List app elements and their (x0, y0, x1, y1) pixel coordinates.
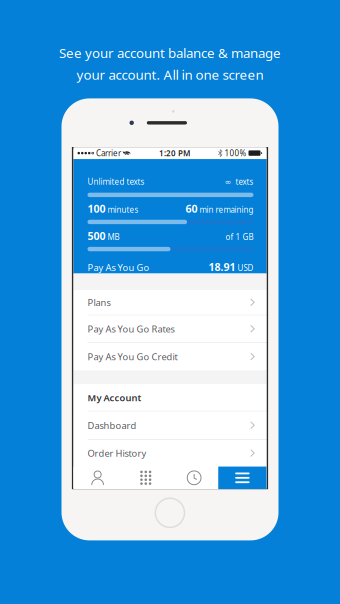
staticText: 100% (222, 148, 246, 158)
button[interactable]: Pay As You Go Rates (73, 315, 266, 342)
staticText: of 1 GB (225, 231, 253, 242)
staticText: Order History (87, 447, 146, 459)
button[interactable]: Plans (73, 290, 266, 315)
staticText: My Account (87, 391, 141, 404)
staticText: 60 (185, 202, 197, 216)
button[interactable]: Account (73, 467, 122, 489)
button[interactable]: Dashboard (73, 412, 266, 439)
staticText: See your account balance & manage (59, 44, 281, 62)
button[interactable]: Keypad (122, 467, 170, 489)
staticText: Dashboard (87, 419, 136, 432)
staticText: Pay As You Go Rates (87, 323, 174, 335)
staticText: Unlimited texts (87, 176, 144, 187)
staticText: 18.91 (208, 260, 235, 274)
staticText: MB (107, 231, 119, 242)
staticText (246, 149, 248, 158)
staticText: 500 (87, 229, 105, 243)
button[interactable]: Menu (218, 467, 266, 489)
staticText: ∞ texts (224, 176, 253, 187)
staticText: Carrier (94, 148, 123, 158)
staticText: Pay As You Go (87, 261, 149, 274)
staticText: 100 (87, 202, 105, 216)
button[interactable]: Recents (170, 467, 218, 489)
staticText: min remaining (199, 204, 253, 215)
button[interactable]: My Account (73, 384, 266, 411)
staticText: Plans (87, 296, 110, 309)
staticText: 1:20 PM (159, 148, 190, 158)
staticText: USD (237, 263, 253, 273)
staticText: your account. All in one screen (76, 66, 263, 83)
button[interactable]: Order History (73, 440, 266, 467)
staticText: Pay As You Go Credit (87, 350, 177, 363)
button[interactable]: Pay As You Go Credit (73, 343, 266, 370)
staticText: minutes (107, 204, 138, 215)
